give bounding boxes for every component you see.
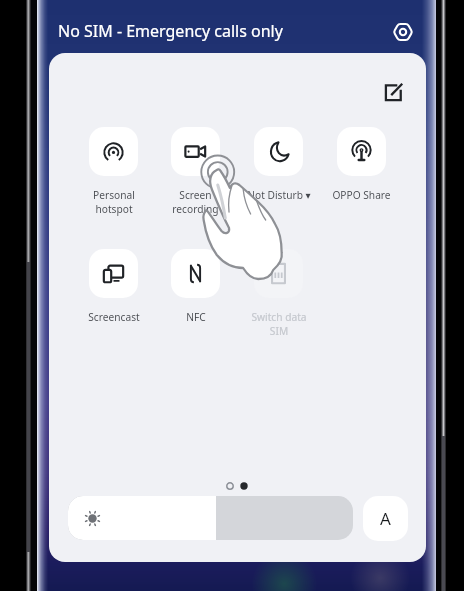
staticText: Personal hotspot bbox=[93, 188, 135, 216]
staticText: No SIM - Emergency calls only bbox=[58, 20, 283, 42]
staticText: A bbox=[380, 507, 391, 530]
button[interactable]: Settings bbox=[388, 17, 418, 47]
staticText: NFC bbox=[186, 310, 206, 324]
staticText: OPPO Share bbox=[332, 188, 391, 202]
button[interactable]: Edit tiles bbox=[376, 75, 410, 109]
button[interactable]: Brightness bbox=[68, 496, 353, 540]
staticText: Switch data SIM bbox=[251, 310, 307, 338]
staticText: Screencast bbox=[88, 310, 140, 324]
staticText: Screen recording bbox=[172, 188, 219, 216]
button[interactable]: Personal hotspot bbox=[77, 127, 150, 216]
button[interactable]: OPPO Share bbox=[325, 127, 398, 202]
button[interactable]: Switch data SIM bbox=[242, 249, 315, 338]
button[interactable]: Screencast bbox=[77, 249, 150, 324]
button[interactable]: Not Disturb ▾ bbox=[242, 127, 315, 202]
button[interactable]: NFC bbox=[159, 249, 232, 324]
button[interactable]: Auto brightness bbox=[363, 496, 408, 541]
staticText: Not Disturb ▾ bbox=[247, 188, 311, 202]
button[interactable]: Screen recording bbox=[159, 127, 232, 216]
